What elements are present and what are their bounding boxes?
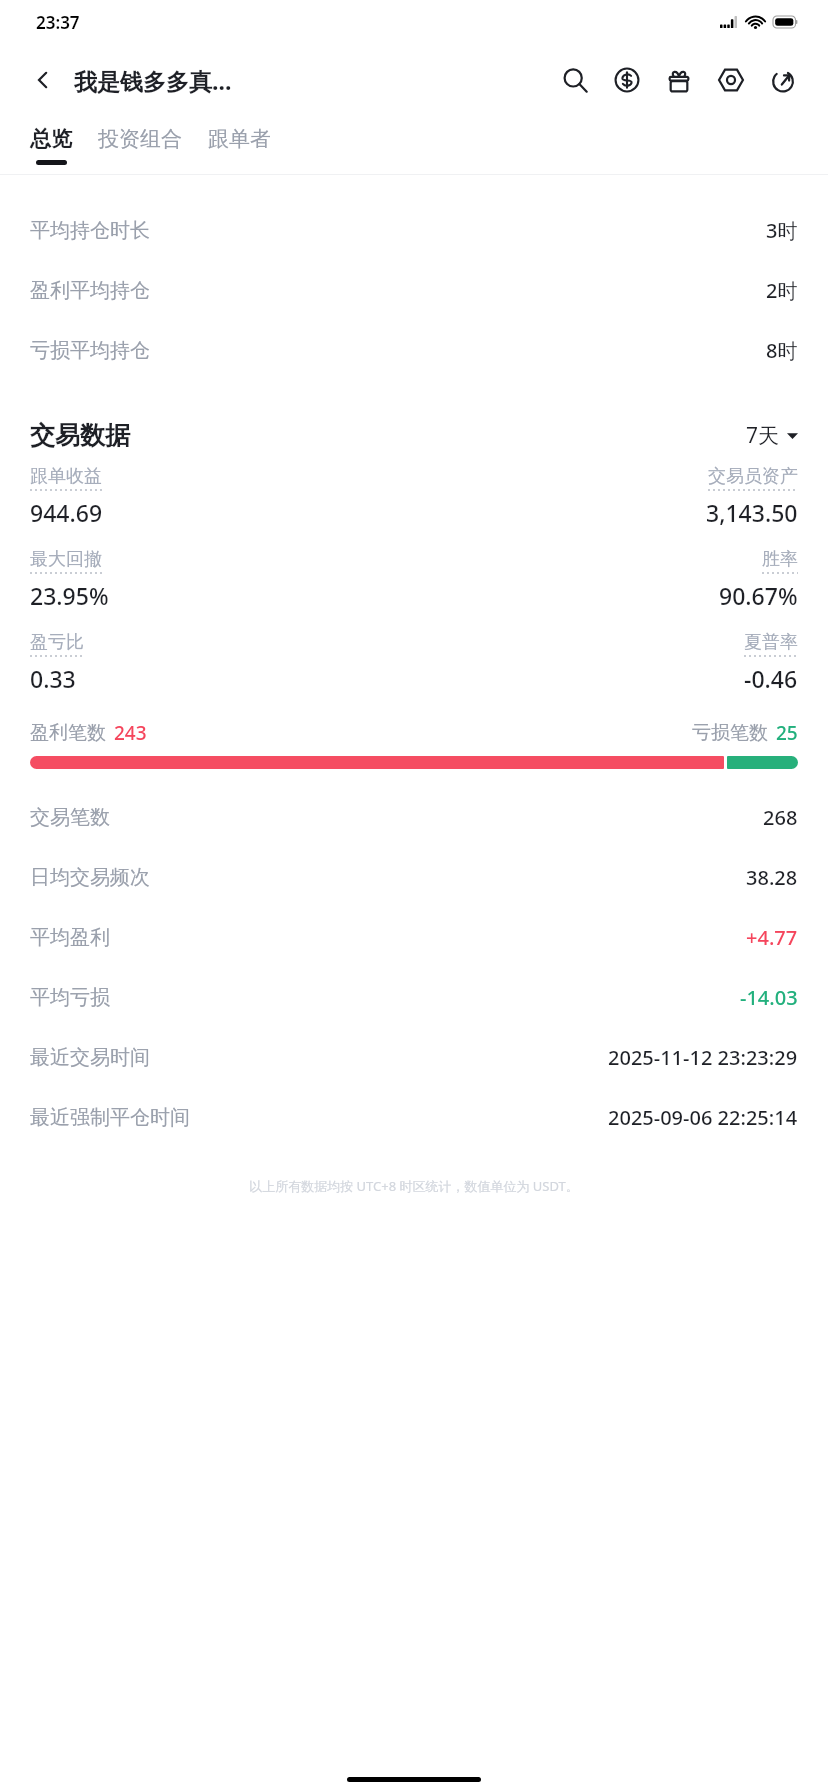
staticText: 交易笔数 <box>30 805 110 830</box>
staticText: 243 <box>114 720 147 746</box>
staticText: -0.46 <box>744 663 798 694</box>
button[interactable]: 跟单者 <box>208 126 271 152</box>
button[interactable]: Search <box>556 61 594 99</box>
staticText: 最近交易时间 <box>30 1045 150 1070</box>
staticText: 38.28 <box>746 864 798 891</box>
staticText: 7天 <box>746 421 780 450</box>
button[interactable]: 跟单收益 <box>30 465 414 528</box>
button[interactable]: 盈亏比 <box>30 631 414 694</box>
staticText: 3时 <box>766 217 798 244</box>
staticText: 23.95% <box>30 580 109 611</box>
staticText: 8时 <box>766 337 798 364</box>
staticText: 2025-09-06 22:25:14 <box>608 1104 798 1131</box>
staticText: -14.03 <box>740 984 798 1011</box>
button[interactable]: Settings <box>712 61 750 99</box>
staticText: 盈利笔数 <box>30 721 106 745</box>
staticText: 0.33 <box>30 663 76 694</box>
button[interactable]: 交易笔数 <box>0 787 828 847</box>
button[interactable]: 总览 <box>30 126 72 152</box>
staticText: 2025-11-12 23:23:29 <box>608 1044 798 1071</box>
staticText: 2时 <box>766 277 798 304</box>
button[interactable]: Share <box>764 61 802 99</box>
button[interactable]: Back <box>26 63 60 97</box>
staticText: 最近强制平仓时间 <box>30 1105 190 1130</box>
staticText: 以上所有数据均按 UTC+8 时区统计，数值单位为 USDT。 <box>0 1177 828 1195</box>
staticText: 日均交易频次 <box>30 865 150 890</box>
staticText: 23:37 <box>36 11 80 34</box>
staticText: 总览 <box>30 126 72 152</box>
button[interactable]: 最近强制平仓时间 <box>0 1087 828 1147</box>
button[interactable]: 平均亏损 <box>0 967 828 1027</box>
staticText: 胜率 <box>762 548 798 571</box>
staticText: 夏普率 <box>744 631 798 654</box>
staticText: 交易员资产 <box>708 465 798 488</box>
button[interactable]: Earnings <box>608 61 646 99</box>
button[interactable]: 最近交易时间 <box>0 1027 828 1087</box>
staticText: 盈亏比 <box>30 631 84 654</box>
staticText: 亏损平均持仓 <box>30 338 150 363</box>
staticText: 最大回撤 <box>30 548 102 571</box>
staticText: 25 <box>776 720 798 746</box>
staticText: 3,143.50 <box>706 497 798 528</box>
button[interactable]: 交易员资产 <box>414 465 798 528</box>
button[interactable]: 投资组合 <box>98 126 182 152</box>
button[interactable]: 7天 <box>746 421 798 450</box>
button[interactable]: 最大回撤 <box>30 548 414 611</box>
button[interactable]: Gift <box>660 61 698 99</box>
staticText: 跟单收益 <box>30 465 102 488</box>
staticText: 投资组合 <box>98 126 182 152</box>
staticText: +4.77 <box>746 924 798 951</box>
staticText: 跟单者 <box>208 126 271 152</box>
staticText: 944.69 <box>30 497 103 528</box>
button[interactable]: 平均盈利 <box>0 907 828 967</box>
staticText: 盈利平均持仓 <box>30 278 150 303</box>
button[interactable]: 我是钱多多真... <box>74 65 232 96</box>
staticText: 90.67% <box>719 580 798 611</box>
staticText: 亏损笔数 <box>692 721 768 745</box>
button[interactable]: 夏普率 <box>414 631 798 694</box>
staticText: 交易数据 <box>30 420 130 451</box>
button[interactable]: 平均持仓时长 <box>0 200 828 260</box>
staticText: 平均亏损 <box>30 985 110 1010</box>
button[interactable]: 盈利平均持仓 <box>0 260 828 320</box>
button[interactable]: 胜率 <box>414 548 798 611</box>
staticText: 平均盈利 <box>30 925 110 950</box>
button[interactable]: 亏损平均持仓 <box>0 320 828 380</box>
button[interactable]: 日均交易频次 <box>0 847 828 907</box>
staticText: 268 <box>763 804 798 831</box>
staticText: 平均持仓时长 <box>30 218 150 243</box>
